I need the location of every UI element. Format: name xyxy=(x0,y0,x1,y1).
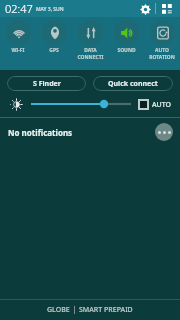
staticText: WI-FI xyxy=(11,47,25,54)
button[interactable]: SOUND xyxy=(108,17,144,70)
staticText: Quick connect xyxy=(108,79,158,89)
staticText: AUTO xyxy=(155,47,169,54)
button[interactable]: AUTO xyxy=(144,17,180,70)
button[interactable]: Brightness slider xyxy=(31,97,131,111)
staticText: DATA xyxy=(84,47,97,54)
staticText: GPS xyxy=(49,47,59,54)
button[interactable]: Settings xyxy=(137,1,153,17)
button[interactable]: GPS xyxy=(36,17,72,70)
staticText: SMART PREPAID xyxy=(79,305,133,315)
staticText: No notifications xyxy=(8,127,73,138)
button[interactable]: DATA xyxy=(72,17,108,70)
staticText: 02:47 xyxy=(5,1,33,16)
button[interactable]: Quick connect xyxy=(93,76,173,91)
staticText: SOUND xyxy=(117,47,136,54)
staticText: S Finder xyxy=(33,79,61,89)
staticText: CONNECTI xyxy=(77,54,104,61)
staticText: MAY 3, SUN xyxy=(36,6,64,13)
button[interactable]: More options xyxy=(155,123,173,141)
staticText: AUTO xyxy=(152,100,172,110)
button[interactable]: WI-FI xyxy=(0,17,36,70)
button[interactable]: Edit quick settings xyxy=(159,1,175,17)
button[interactable]: AUTO xyxy=(138,99,172,110)
staticText: ROTATION xyxy=(149,54,175,61)
button[interactable]: S Finder xyxy=(7,76,86,91)
staticText: GLOBE xyxy=(47,305,70,315)
button[interactable]: Brightness xyxy=(8,96,24,112)
